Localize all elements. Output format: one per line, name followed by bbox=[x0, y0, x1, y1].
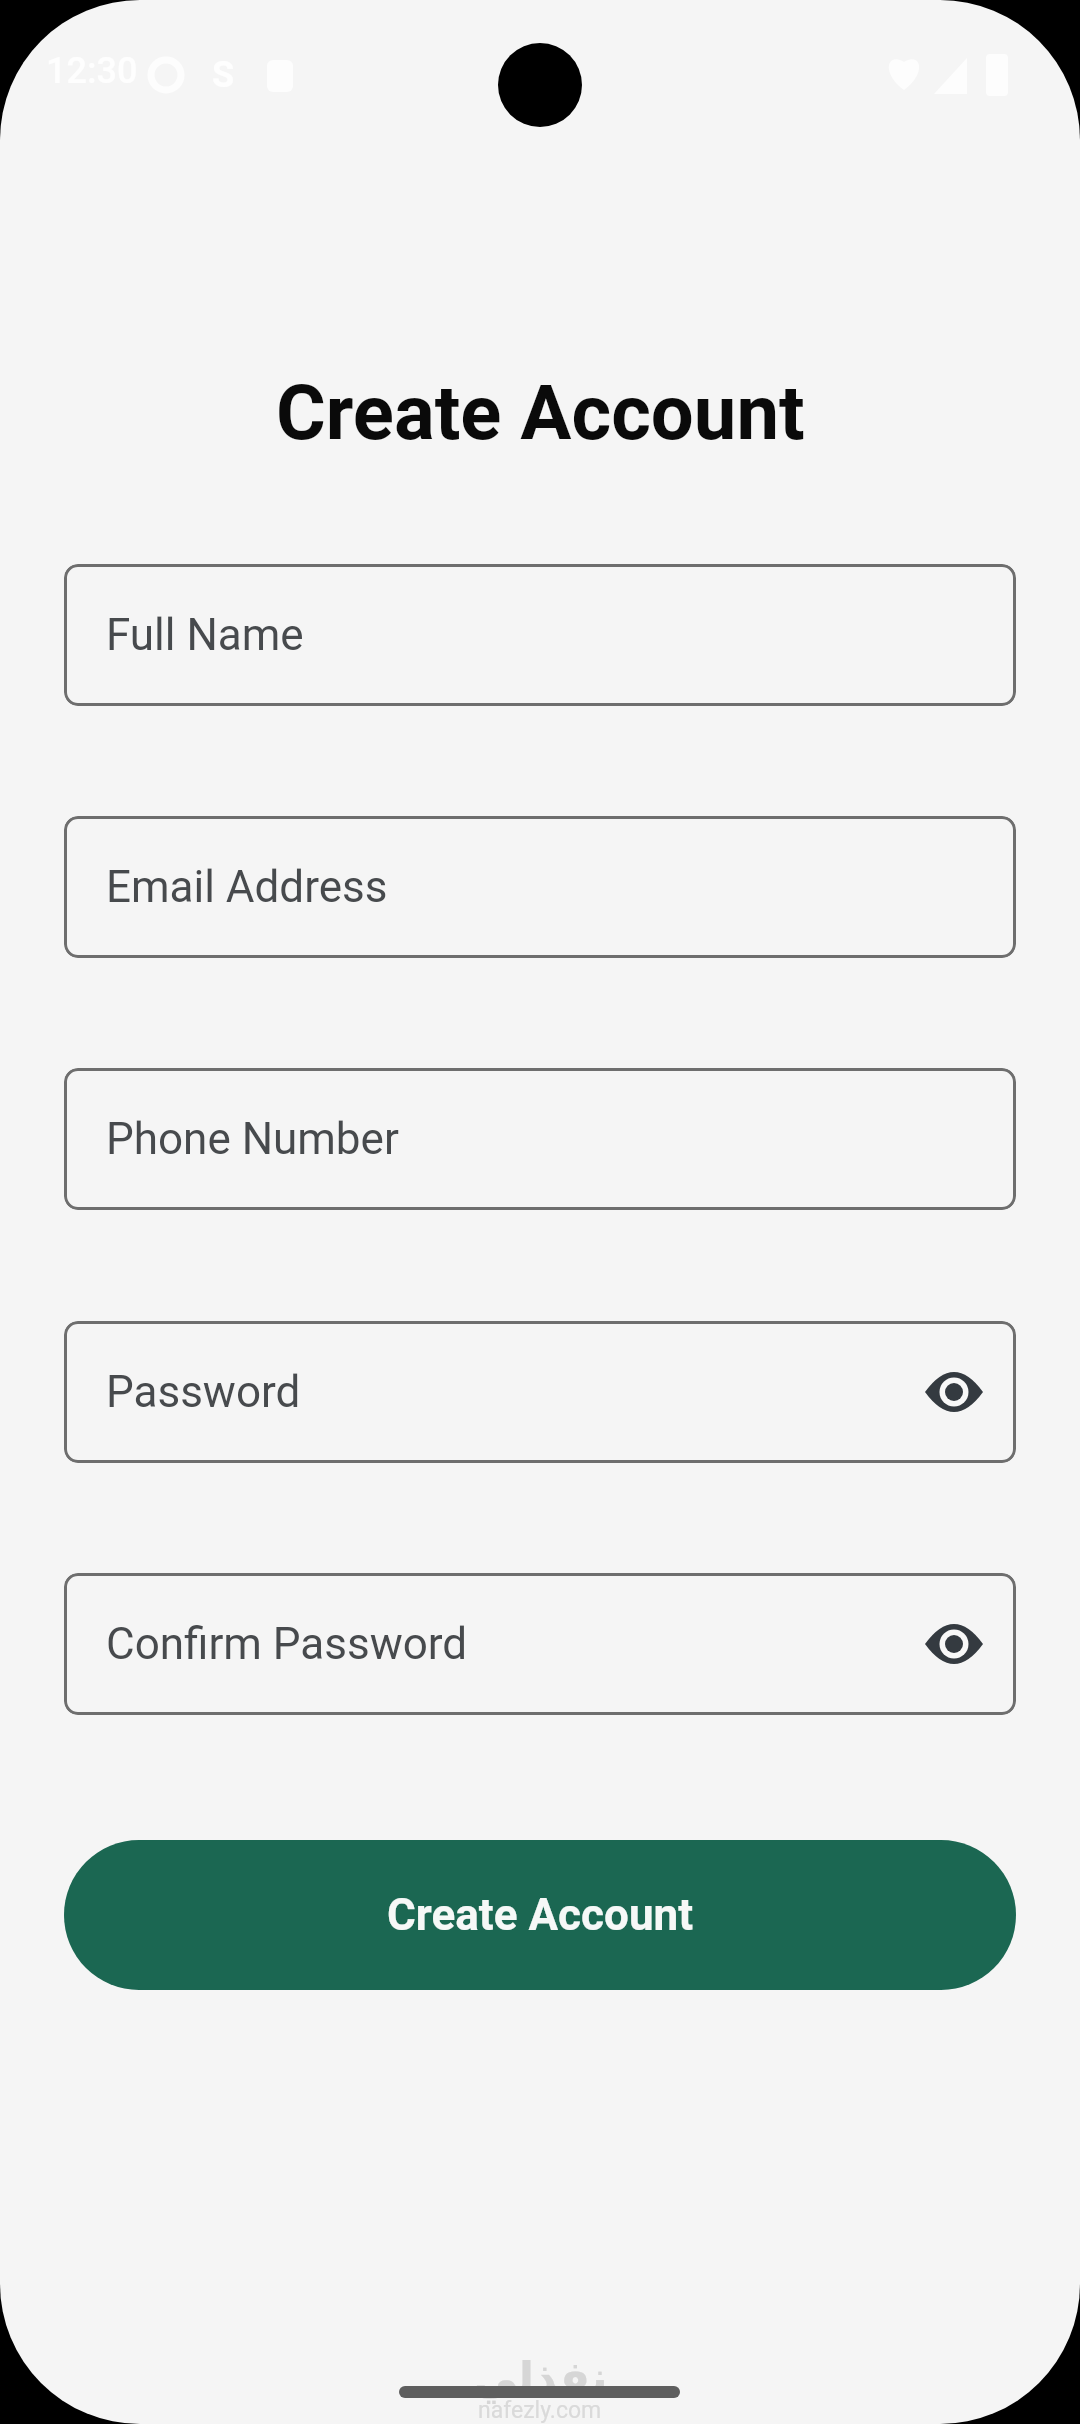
staticText: S bbox=[212, 54, 235, 96]
staticText: Full Name bbox=[106, 609, 304, 661]
staticText: Phone Number bbox=[106, 1113, 399, 1165]
staticText: Email Address bbox=[106, 861, 388, 913]
button[interactable]: Password bbox=[64, 1321, 1016, 1463]
staticText: Create Account bbox=[276, 368, 805, 457]
staticText: nafezly.com bbox=[478, 2397, 602, 2424]
button[interactable]: Phone Number bbox=[64, 1068, 1016, 1210]
button[interactable]: Create Account bbox=[64, 1840, 1016, 1990]
staticText: Password bbox=[106, 1366, 301, 1418]
staticText: Create Account bbox=[387, 1889, 694, 1941]
staticText: نفذلي bbox=[473, 2352, 608, 2403]
button[interactable]: Confirm Password bbox=[64, 1573, 1016, 1715]
button[interactable]: Email Address bbox=[64, 816, 1016, 958]
button[interactable]: Full Name bbox=[64, 564, 1016, 706]
staticText: 12:30 bbox=[46, 50, 138, 92]
staticText: Confirm Password bbox=[106, 1618, 468, 1670]
